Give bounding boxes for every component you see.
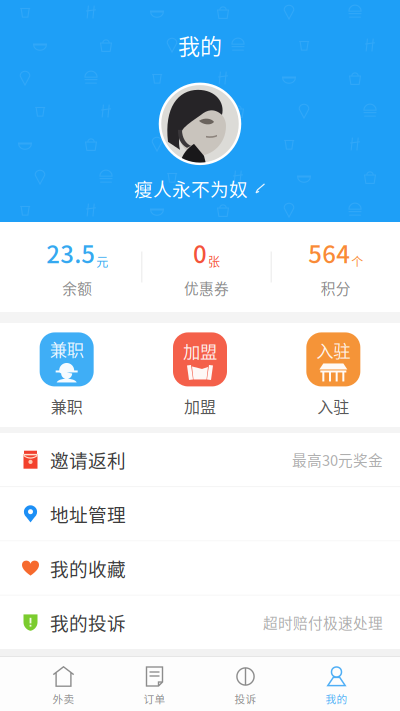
staticText: 入驻: [316, 337, 350, 362]
button[interactable]: 邀请返利: [0, 433, 400, 486]
staticText: 积分: [321, 277, 351, 298]
button[interactable]: 订单: [109, 657, 200, 711]
staticText: 564: [308, 235, 350, 270]
staticText: 入驻: [317, 394, 349, 418]
staticText: 加盟: [184, 394, 216, 418]
button[interactable]: 入驻: [267, 332, 400, 418]
staticText: 外卖: [52, 691, 74, 706]
staticText: 兼职: [50, 336, 84, 361]
button[interactable]: 我的: [291, 657, 382, 711]
button[interactable]: 我的收藏: [0, 541, 400, 595]
staticText: 最高30元奖金: [292, 449, 383, 470]
staticText: 张: [208, 253, 220, 270]
staticText: 订单: [143, 691, 165, 706]
staticText: 元: [96, 253, 108, 270]
button[interactable]: 23.5: [13, 235, 141, 298]
button[interactable]: 0: [142, 235, 271, 298]
staticText: 个: [351, 253, 363, 270]
button[interactable]: 外卖: [18, 657, 109, 711]
staticText: 我的: [325, 691, 347, 706]
staticText: 地址管理: [50, 500, 126, 527]
button[interactable]: 兼职: [0, 332, 133, 418]
staticText: 优惠券: [184, 277, 229, 298]
staticText: 23.5: [46, 235, 95, 270]
staticText: 加盟: [183, 338, 217, 363]
staticText: 瘦人永不为奴: [134, 175, 248, 202]
button[interactable]: 我的投诉: [0, 596, 400, 649]
staticText: 邀请返利: [50, 446, 126, 473]
staticText: 0: [193, 235, 207, 270]
staticText: 余额: [62, 277, 92, 298]
staticText: 我的: [178, 29, 222, 61]
button[interactable]: 瘦人永不为奴: [134, 175, 266, 202]
staticText: 超时赔付极速处理: [263, 612, 383, 633]
staticText: 我的投诉: [50, 609, 126, 636]
staticText: 兼职: [51, 394, 83, 418]
staticText: 我的收藏: [50, 555, 126, 582]
staticText: 投诉: [234, 691, 256, 706]
button[interactable]: 地址管理: [0, 487, 400, 541]
button[interactable]: 投诉: [200, 657, 291, 711]
button[interactable]: 加盟: [133, 332, 267, 418]
button[interactable]: 564: [272, 235, 400, 298]
